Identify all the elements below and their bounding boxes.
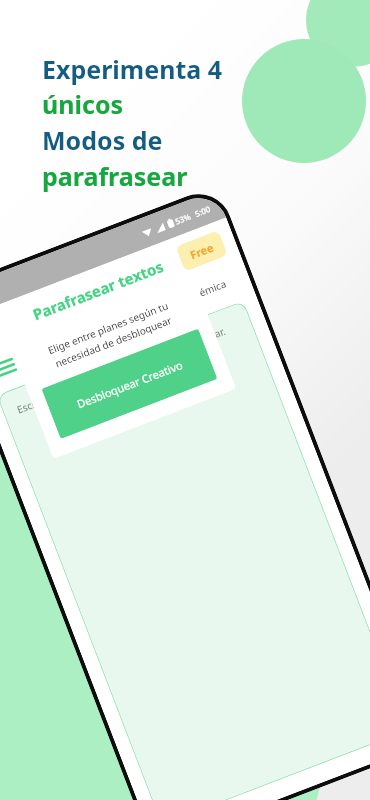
staticText: Parafrasear textos bbox=[30, 256, 167, 324]
button[interactable]: Escribe o pega el texto que quieras para… bbox=[0, 301, 370, 800]
staticText: Académica bbox=[176, 276, 228, 308]
staticText: Escribe o pega el texto que quieras para… bbox=[15, 324, 228, 417]
staticText: 5:00 bbox=[193, 203, 212, 219]
staticText: Elige entre planes según tu necesidad de… bbox=[27, 291, 194, 378]
staticText: Experimenta 4 únicos Modos de parafrasea… bbox=[42, 52, 223, 194]
staticText: Desbloquear Creativo bbox=[75, 357, 185, 411]
button[interactable]: Free bbox=[175, 230, 228, 272]
button[interactable]: Menu bbox=[0, 346, 26, 390]
button[interactable]: Desbloquear Creativo bbox=[41, 328, 218, 439]
staticText: Free bbox=[188, 240, 215, 262]
button[interactable]: Académica bbox=[164, 268, 239, 316]
staticText: 53% bbox=[173, 211, 192, 227]
